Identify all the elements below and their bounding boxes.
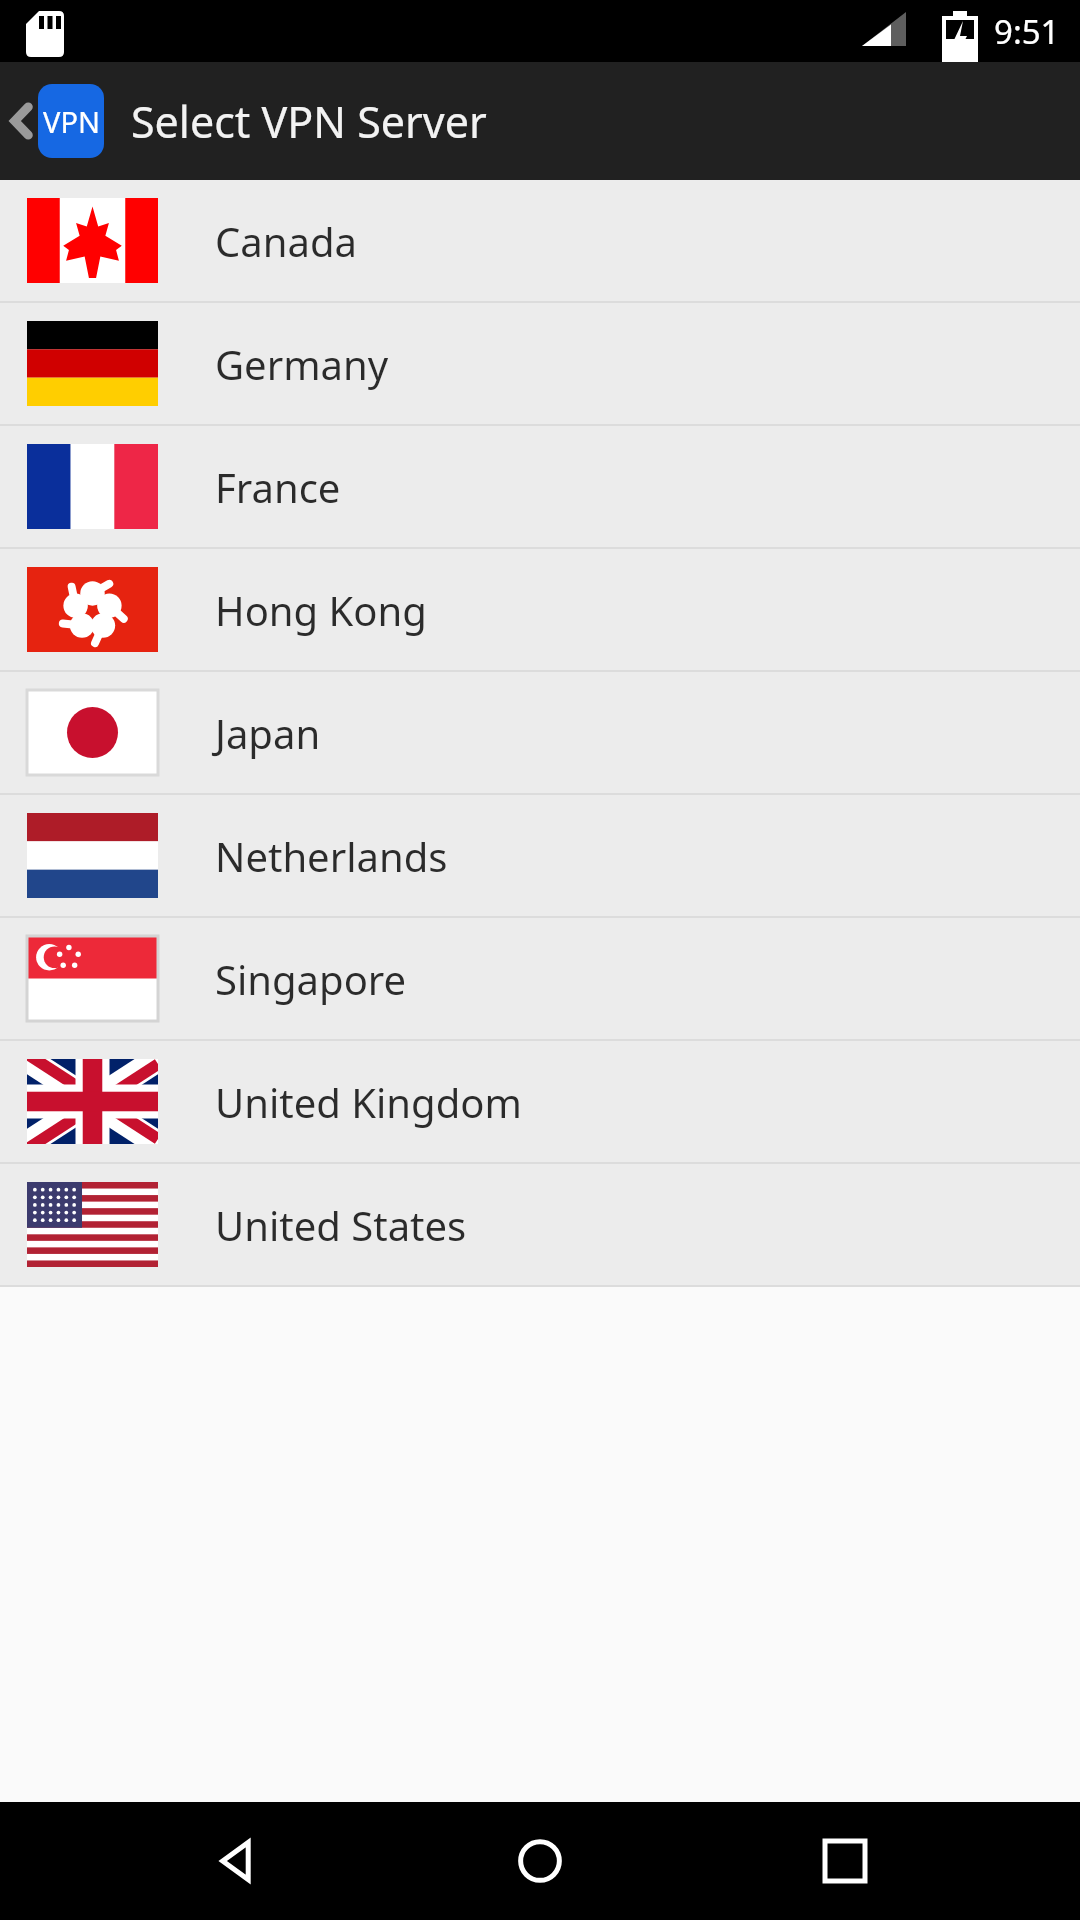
staticText: Canada xyxy=(215,214,357,268)
staticText: Japan xyxy=(215,706,321,760)
button[interactable]: Singapore xyxy=(0,918,1080,1039)
button[interactable]: Back xyxy=(165,1802,305,1920)
button[interactable]: Germany xyxy=(0,303,1080,424)
button[interactable]: Japan xyxy=(0,672,1080,793)
button[interactable]: Home xyxy=(470,1802,610,1920)
staticText: 9:51 xyxy=(994,9,1060,54)
staticText: Netherlands xyxy=(215,829,448,883)
staticText: Germany xyxy=(215,337,389,391)
button[interactable]: Canada xyxy=(0,180,1080,301)
staticText: United Kingdom xyxy=(215,1075,522,1129)
button[interactable]: Hong Kong xyxy=(0,549,1080,670)
button[interactable]: United Kingdom xyxy=(0,1041,1080,1162)
staticText: Hong Kong xyxy=(215,583,427,637)
button[interactable]: Netherlands xyxy=(0,795,1080,916)
button[interactable]: United States xyxy=(0,1164,1080,1285)
button[interactable]: Navigate up xyxy=(0,62,110,180)
button[interactable]: Recent apps xyxy=(775,1802,915,1920)
staticText: Select VPN Server xyxy=(131,92,487,151)
staticText: VPN xyxy=(43,102,100,141)
staticText: France xyxy=(215,460,341,514)
button[interactable]: France xyxy=(0,426,1080,547)
staticText: Singapore xyxy=(215,952,407,1006)
staticText: United States xyxy=(215,1198,467,1252)
